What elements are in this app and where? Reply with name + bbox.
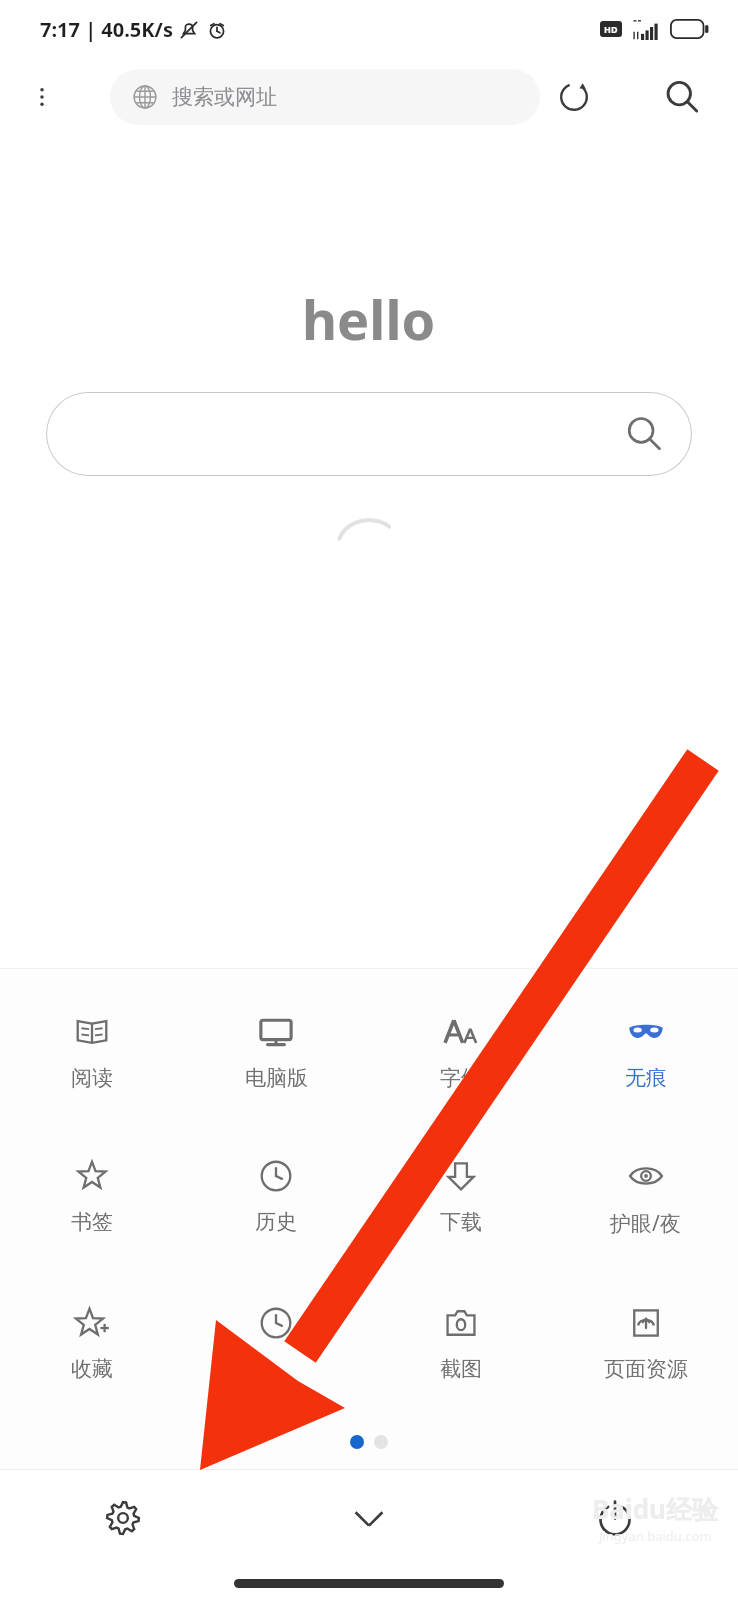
button[interactable]: Exit: [492, 1470, 738, 1566]
staticText: 截图: [440, 1356, 482, 1382]
staticText: 页面资源: [604, 1356, 688, 1382]
staticText: 下载: [440, 1209, 482, 1235]
staticText: 书签: [71, 1209, 113, 1235]
button[interactable]: Settings: [0, 1470, 246, 1566]
staticText: 搜索或网址: [172, 84, 277, 110]
button[interactable]: Collapse menu: [246, 1470, 492, 1566]
button[interactable]: [184, 1292, 368, 1395]
button[interactable]: 搜索或网址: [110, 69, 540, 125]
staticText: hello: [302, 282, 436, 356]
staticText: 阅读: [71, 1065, 113, 1091]
staticText: 电脑版: [245, 1065, 308, 1091]
button[interactable]: 阅读: [0, 1001, 184, 1101]
staticText: 护眼/夜: [610, 1209, 681, 1238]
button[interactable]: 无痕: [553, 1001, 738, 1101]
button[interactable]: 电脑版: [184, 1001, 368, 1101]
staticText: 收藏: [71, 1356, 113, 1382]
staticText: 无痕: [625, 1065, 667, 1091]
button[interactable]: Search: [654, 69, 710, 125]
staticText: 字体: [440, 1065, 482, 1091]
staticText: jingyan.baidu.com: [599, 1527, 712, 1545]
staticText: 7:17 | 40.5K/s: [40, 16, 173, 43]
button[interactable]: 下载: [368, 1145, 553, 1245]
button[interactable]: 页面资源: [553, 1292, 738, 1392]
button[interactable]: Refresh: [546, 69, 602, 125]
button[interactable]: 收藏: [0, 1292, 184, 1392]
button[interactable]: 历史: [184, 1145, 368, 1245]
button[interactable]: 截图: [368, 1292, 553, 1392]
button[interactable]: [46, 392, 692, 476]
button[interactable]: 字体: [368, 1001, 553, 1101]
staticText: Baidu经验: [592, 1491, 718, 1527]
staticText: 历史: [255, 1209, 297, 1235]
button[interactable]: 书签: [0, 1145, 184, 1245]
staticText: HD: [604, 23, 618, 35]
button[interactable]: 护眼/夜: [553, 1145, 738, 1248]
button[interactable]: More options: [20, 75, 64, 119]
